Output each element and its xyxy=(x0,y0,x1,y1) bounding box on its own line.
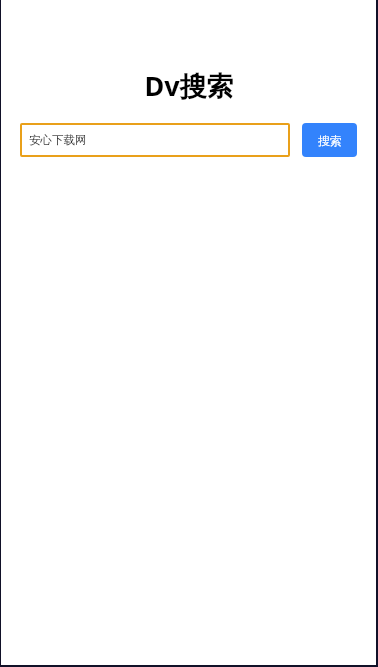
button[interactable]: 安心下载网 xyxy=(20,123,290,157)
staticText: Dv搜索 xyxy=(144,67,234,104)
staticText: 搜索 xyxy=(318,133,342,148)
staticText: 安心下载网 xyxy=(29,133,87,147)
button[interactable]: 搜索 xyxy=(302,123,357,157)
